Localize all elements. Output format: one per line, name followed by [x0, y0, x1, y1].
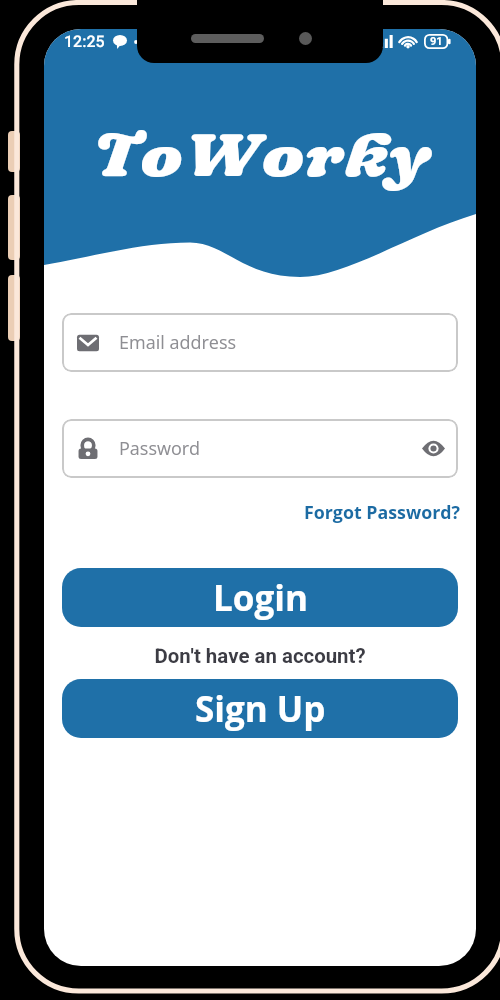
button[interactable]: Sign Up: [62, 679, 458, 738]
staticText: 12:25: [64, 32, 105, 51]
button[interactable]: Forgot Password?: [300, 497, 464, 527]
staticText: ToWorky: [93, 117, 433, 191]
staticText: 91: [430, 35, 443, 48]
staticText: Email address: [119, 330, 237, 355]
staticText: Don't have an account?: [44, 644, 476, 668]
button[interactable]: Password: [62, 419, 458, 478]
button[interactable]: Login: [62, 568, 458, 627]
other: Show password: [422, 440, 445, 457]
button[interactable]: Email address: [62, 313, 458, 372]
staticText: Login: [213, 574, 308, 622]
staticText: Password: [119, 436, 201, 461]
staticText: Forgot Password?: [304, 500, 460, 524]
staticText: Sign Up: [195, 685, 326, 733]
